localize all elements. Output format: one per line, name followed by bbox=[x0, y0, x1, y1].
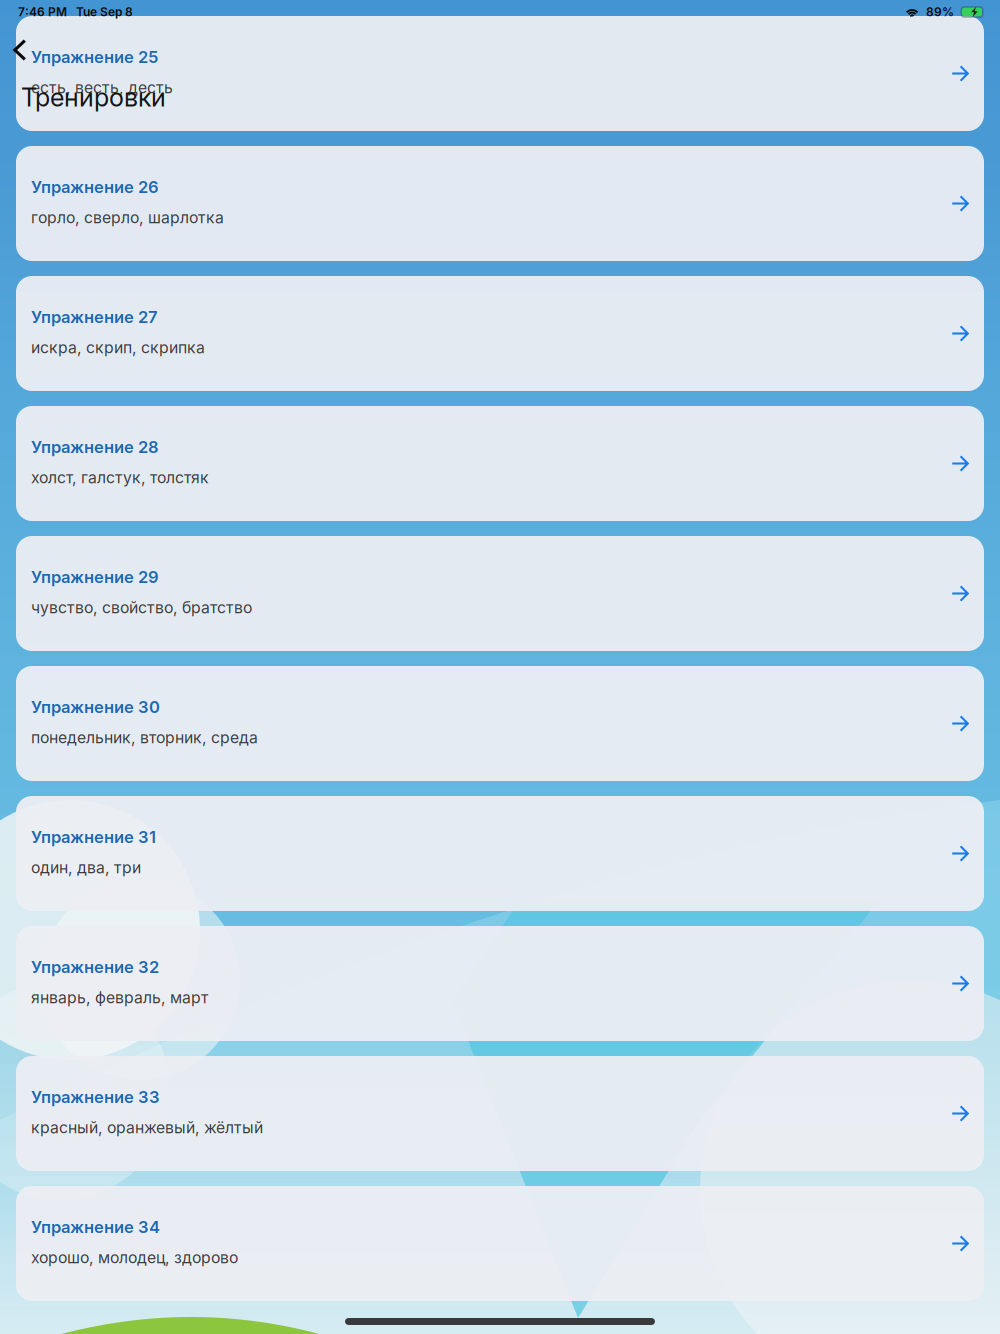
staticText: Упражнение 29 bbox=[31, 567, 159, 587]
staticText: хорошо, молодец, здорово bbox=[31, 1248, 238, 1267]
staticText: Упражнение 34 bbox=[31, 1217, 160, 1237]
staticText: красный, оранжевый, жёлтый bbox=[31, 1118, 263, 1137]
button[interactable]: Упражнение 30 bbox=[16, 666, 984, 781]
staticText: Упражнение 27 bbox=[31, 307, 158, 327]
staticText: Упражнение 25 bbox=[31, 47, 158, 67]
button[interactable]: Упражнение 27 bbox=[16, 276, 984, 391]
button[interactable]: Упражнение 32 bbox=[16, 926, 984, 1041]
staticText: Упражнение 31 bbox=[31, 827, 156, 847]
staticText: есть, весть, десть bbox=[31, 78, 173, 97]
staticText: 89% bbox=[920, 5, 960, 19]
staticText: один, два, три bbox=[31, 858, 141, 877]
staticText: горло, сверло, шарлотка bbox=[31, 208, 224, 227]
staticText: Тренировки bbox=[21, 82, 166, 113]
staticText: искра, скрип, скрипка bbox=[31, 338, 205, 357]
button[interactable]: Упражнение 26 bbox=[16, 146, 984, 261]
staticText: Упражнение 32 bbox=[31, 957, 159, 977]
staticText: Упражнение 33 bbox=[31, 1087, 160, 1107]
staticText: холст, галстук, толстяк bbox=[31, 468, 209, 487]
staticText: Упражнение 28 bbox=[31, 437, 159, 457]
button[interactable]: Back bbox=[0, 34, 38, 66]
staticText: Упражнение 30 bbox=[31, 697, 160, 717]
button[interactable]: Упражнение 25 bbox=[16, 16, 984, 131]
button[interactable]: Упражнение 29 bbox=[16, 536, 984, 651]
staticText: январь, февраль, март bbox=[31, 988, 208, 1007]
staticText: понедельник, вторник, среда bbox=[31, 728, 258, 747]
staticText: Упражнение 26 bbox=[31, 177, 159, 197]
button[interactable]: Упражнение 28 bbox=[16, 406, 984, 521]
button[interactable]: Упражнение 34 bbox=[16, 1186, 984, 1301]
button[interactable]: Упражнение 33 bbox=[16, 1056, 984, 1171]
button[interactable]: Упражнение 31 bbox=[16, 796, 984, 911]
staticText: чувство, свойство, братство bbox=[31, 598, 252, 617]
staticText: 7:46 PM Tue Sep 8 bbox=[18, 5, 133, 19]
